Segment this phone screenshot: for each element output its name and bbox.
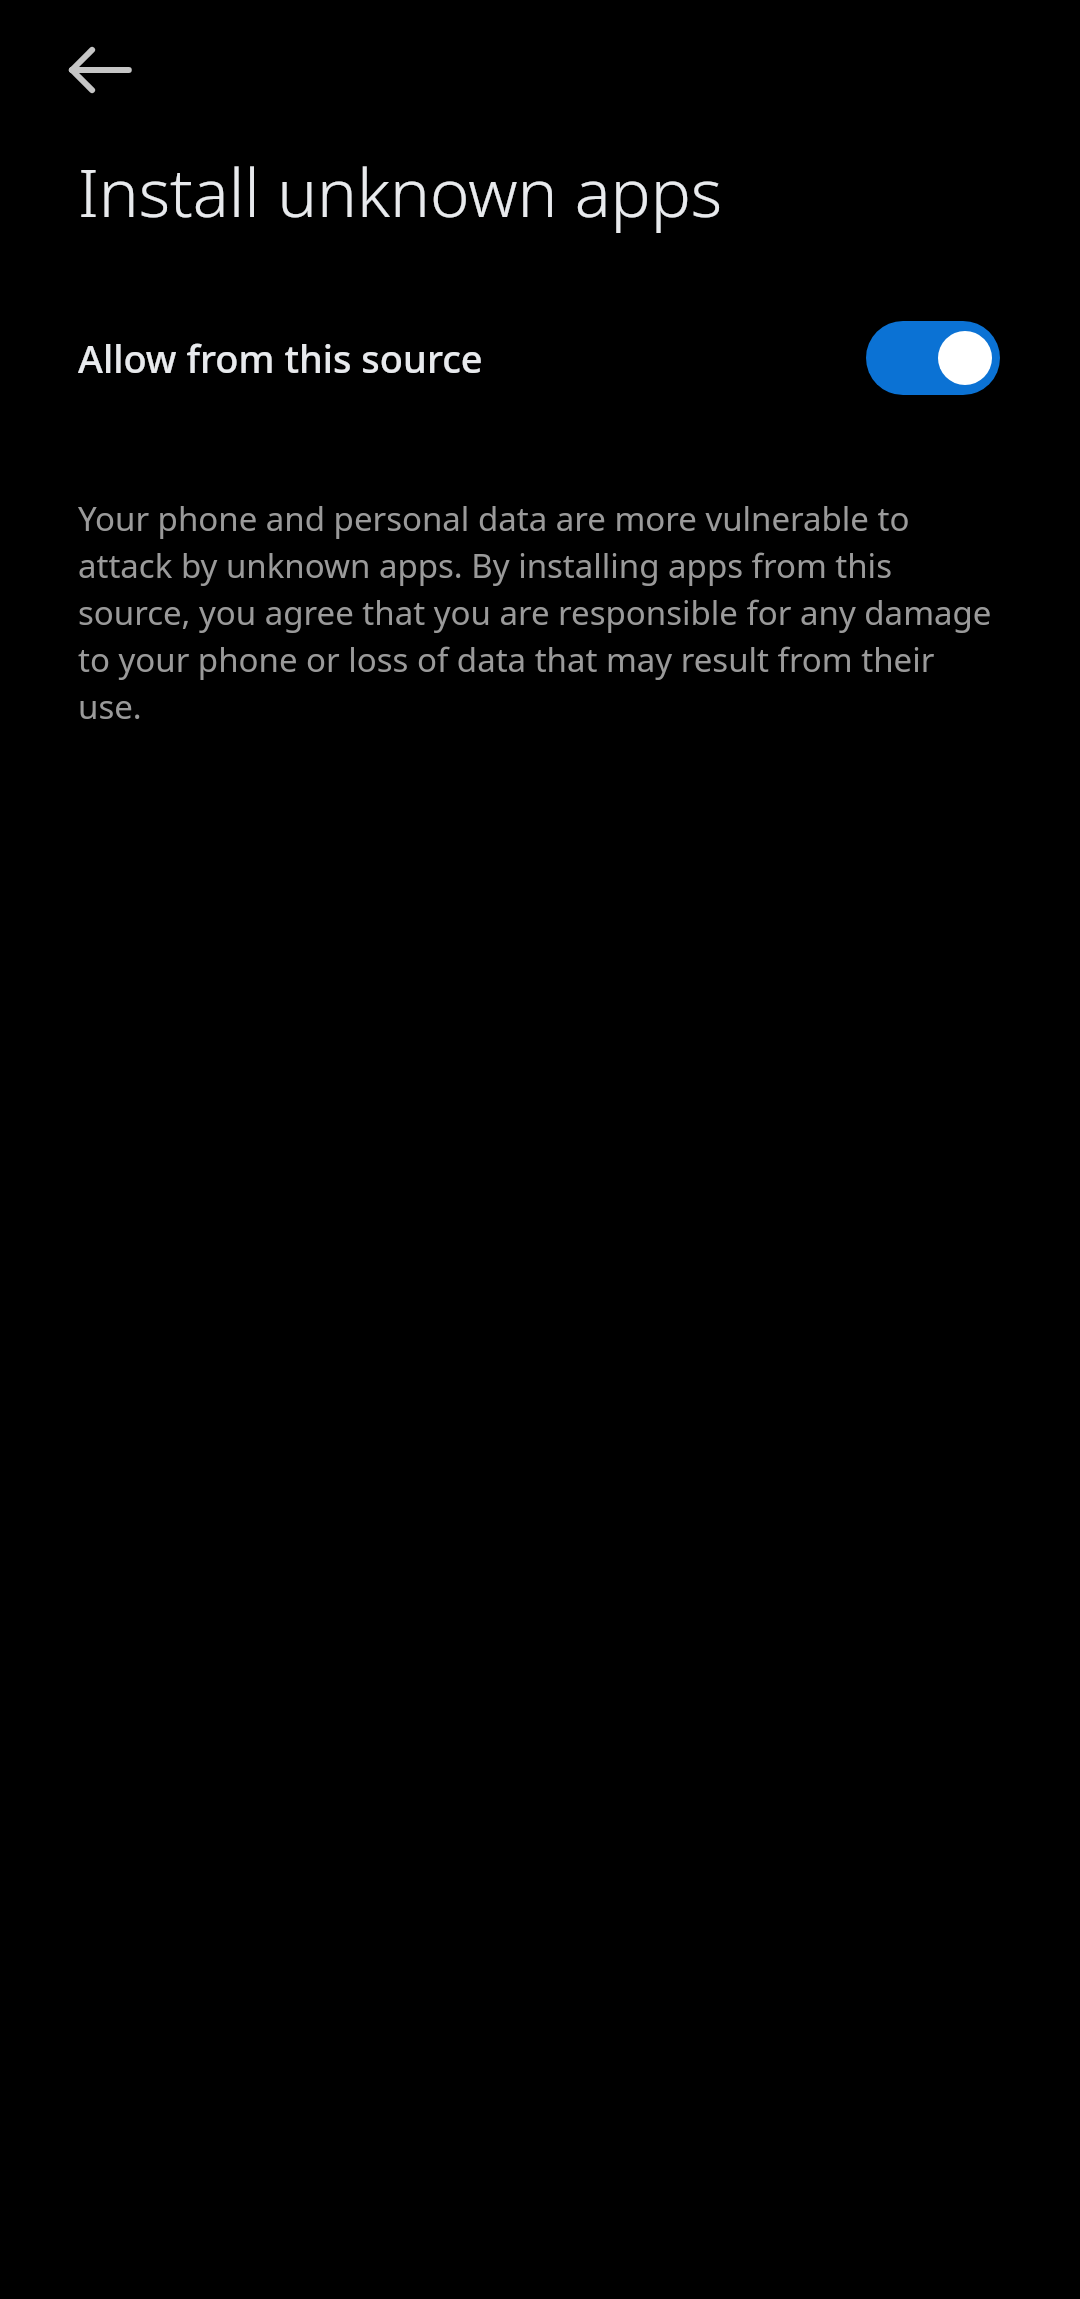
button[interactable]: Allow from this source bbox=[0, 288, 1080, 428]
staticText: Allow from this source bbox=[78, 332, 866, 384]
button[interactable]: Navigate up bbox=[40, 10, 160, 130]
staticText: Install unknown apps bbox=[78, 145, 1040, 236]
staticText: Your phone and personal data are more vu… bbox=[78, 496, 1002, 729]
button[interactable]: Allow from this source, on bbox=[866, 321, 1000, 395]
